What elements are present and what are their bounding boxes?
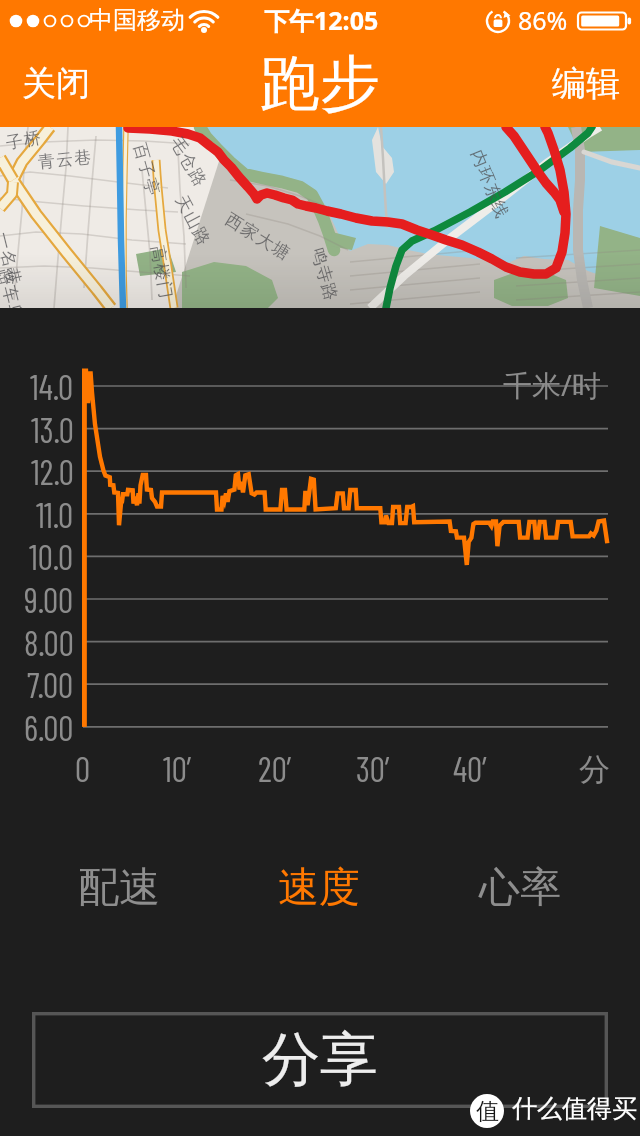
staticText: 30′ [356, 748, 393, 788]
button[interactable]: 心率 [442, 848, 598, 928]
staticText: 什么值得买 [512, 1093, 637, 1124]
staticText: 青云巷 [37, 146, 94, 173]
staticText: 心率 [479, 862, 561, 914]
staticText: 9.00 [24, 579, 74, 620]
staticText: 86% [518, 3, 568, 37]
staticText: 中国移动 [89, 5, 185, 35]
button[interactable]: 关闭 [0, 40, 112, 127]
staticText: 内环东线 [466, 147, 513, 222]
staticText: 编辑 [552, 62, 620, 105]
staticText: 千米/时 [503, 365, 601, 405]
staticText: 13.0 [31, 409, 74, 450]
staticText: 7.00 [27, 664, 74, 705]
button[interactable]: 编辑 [532, 40, 640, 127]
staticText: 值 [476, 1097, 499, 1126]
staticText: 0 [75, 748, 91, 788]
staticText: 40′ [453, 748, 491, 788]
staticText: 12.0 [31, 451, 74, 492]
button[interactable]: 分享 [32, 1012, 608, 1108]
staticText: 10.0 [29, 536, 74, 577]
staticText: 百子亭 [129, 141, 164, 199]
staticText: 11.0 [36, 494, 74, 535]
staticText: 14.0 [30, 366, 74, 407]
staticText: 速度 [278, 862, 360, 914]
button[interactable]: 配速 [41, 848, 197, 928]
staticText: 高楼门 [147, 244, 177, 301]
button[interactable]: 速度 [241, 848, 397, 928]
staticText: 10′ [163, 748, 195, 788]
staticText: 子桥 [4, 127, 44, 154]
staticText: 6.00 [24, 707, 74, 748]
staticText: 鸣寺路 [307, 246, 342, 304]
staticText: 配速 [78, 862, 160, 914]
staticText: 跑步 [260, 46, 380, 122]
staticText: 路车鸟湾 [0, 266, 32, 308]
staticText: 8.00 [24, 622, 74, 663]
staticText: 关闭 [22, 62, 90, 105]
staticText: 下午12:05 [264, 3, 379, 37]
staticText: 20′ [258, 748, 295, 788]
staticText: 分享 [262, 1023, 378, 1096]
staticText: 分 [579, 750, 610, 789]
staticText: 一名巷 [0, 230, 25, 288]
staticText: 毛仓路 [166, 133, 212, 191]
staticText: 天山路 [171, 192, 215, 250]
staticText: 西家大塘 [221, 209, 294, 265]
